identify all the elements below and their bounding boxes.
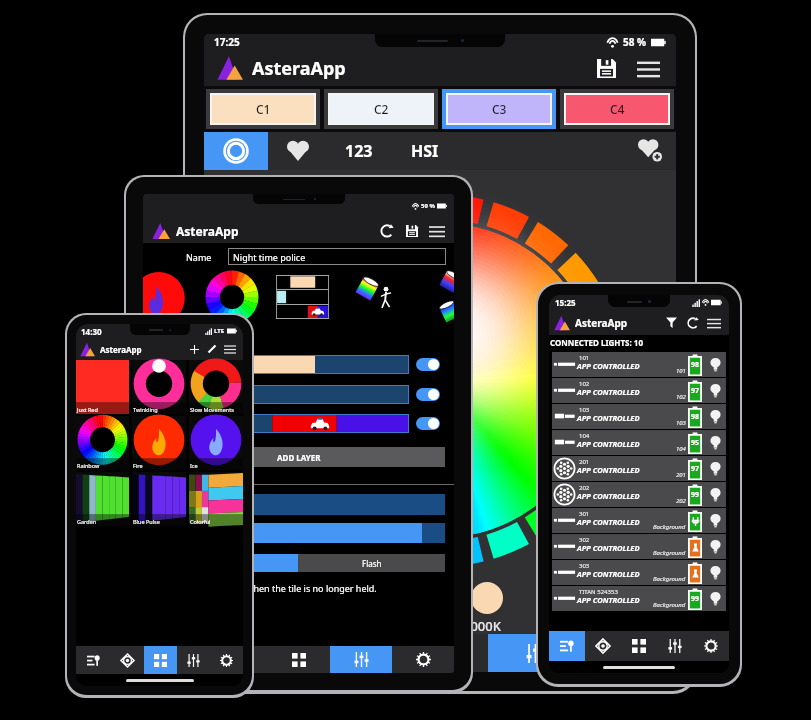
button[interactable]: Twinkling [132, 360, 186, 414]
button[interactable]: 303 [552, 560, 726, 585]
button[interactable]: Toggle layer [416, 388, 440, 401]
button[interactable]: Toggle layer [416, 358, 440, 371]
button[interactable]: Presets [621, 631, 657, 661]
button[interactable]: Just Red [76, 360, 129, 414]
button[interactable]: Presets [268, 646, 330, 673]
staticText: CONNECTED LIGHTS: 10 [550, 337, 643, 348]
button[interactable]: Ice [189, 416, 243, 470]
staticText: 95 [691, 438, 700, 448]
staticText: C4 [610, 101, 625, 117]
staticText: Garden [77, 518, 97, 525]
button[interactable]: Paint bucket rainbow [352, 274, 382, 304]
button[interactable]: Rainbow [76, 416, 129, 470]
button[interactable]: Fire [132, 416, 186, 470]
button[interactable]: Sliders [657, 631, 693, 661]
button[interactable]: Settings [582, 634, 676, 672]
button[interactable]: Slow Movements [189, 360, 243, 414]
button[interactable]: 301 [552, 508, 726, 533]
button[interactable]: Settings [210, 646, 243, 674]
staticText: APP CONTROLLED [577, 439, 640, 449]
button[interactable]: 102 [552, 378, 726, 403]
button[interactable]: Paint bucket green [436, 298, 454, 326]
button[interactable]: CCT preset [471, 582, 503, 614]
button[interactable]: Garden [76, 472, 129, 526]
staticText: 58 % [623, 35, 647, 49]
button[interactable]: Menu [703, 312, 724, 333]
button[interactable]: Settings [693, 631, 729, 661]
staticText: APP CONTROLLED [577, 543, 640, 553]
staticText: 101 [676, 367, 686, 375]
button[interactable]: 201 [552, 456, 726, 481]
button[interactable]: Colorful [189, 472, 243, 526]
button[interactable]: Lights [549, 631, 585, 661]
button[interactable]: Add to favorites [624, 132, 676, 170]
staticText: 301 [579, 510, 590, 518]
button[interactable]: Sliders [330, 646, 392, 673]
button[interactable]: Blue Pulse [132, 472, 186, 526]
button[interactable]: Sliders [177, 646, 210, 674]
button[interactable]: Menu [632, 52, 664, 84]
button[interactable]: Lights [204, 634, 299, 672]
button[interactable]: 202 [552, 482, 726, 507]
button[interactable]: Color wheel effect [205, 270, 259, 324]
button[interactable]: Menu [221, 340, 239, 358]
staticText: 99 [691, 594, 700, 604]
button[interactable]: Menu [425, 219, 448, 242]
button[interactable]: ADD LAYER [152, 447, 445, 467]
button[interactable]: Fire effect [143, 272, 191, 324]
staticText: C2 [374, 101, 389, 117]
button[interactable]: C4 [566, 95, 668, 123]
button[interactable]: Save [400, 219, 423, 242]
staticText: 302 [579, 536, 590, 544]
button[interactable]: Groups [299, 634, 394, 672]
staticText: Background [653, 575, 686, 583]
staticText: 123 [345, 140, 373, 162]
button[interactable]: 101 [552, 352, 726, 377]
staticText: APP CONTROLLED [577, 387, 640, 397]
staticText: AsteraApp [575, 316, 628, 330]
button[interactable]: 302 [552, 534, 726, 559]
staticText: HSI [411, 140, 439, 162]
button[interactable]: Night time police effect [276, 275, 329, 319]
button[interactable]: Paint bucket red [436, 268, 454, 296]
button[interactable]: Lights [76, 646, 110, 674]
button[interactable]: Presets [144, 646, 177, 674]
button[interactable]: Add [185, 340, 203, 358]
button[interactable]: Filter [661, 312, 682, 333]
staticText: Background [653, 523, 686, 531]
button[interactable]: Sliders [488, 634, 582, 672]
staticText: 101 [579, 354, 590, 362]
button[interactable]: 123 [328, 132, 390, 170]
button[interactable]: Latch [152, 554, 298, 572]
button[interactable]: 104 [552, 430, 726, 455]
button[interactable]: C1 [212, 95, 314, 123]
staticText: LTE [214, 327, 225, 335]
button[interactable]: Edit [203, 340, 221, 358]
button[interactable]: Presets [394, 634, 488, 672]
button[interactable]: Refresh [375, 219, 398, 242]
button[interactable]: Groups [110, 646, 144, 674]
button[interactable]: 103 [552, 404, 726, 429]
button[interactable]: Refresh [682, 312, 703, 333]
staticText: 202 [579, 484, 590, 492]
button[interactable]: Settings [392, 646, 454, 673]
staticText: 201 [676, 471, 686, 479]
staticText: Blue Pulse [133, 518, 160, 525]
button[interactable]: Lights [143, 646, 206, 673]
staticText: 202 [676, 497, 686, 505]
staticText: APP CONTROLLED [577, 569, 640, 579]
staticText: Ice [190, 462, 198, 469]
button[interactable]: Groups [206, 646, 268, 673]
button[interactable]: C2 [330, 95, 432, 123]
button[interactable]: Save [590, 52, 622, 84]
button[interactable]: Groups [585, 631, 621, 661]
button[interactable]: TITAN 524353 [552, 586, 726, 611]
button[interactable]: Flash [298, 554, 445, 572]
button[interactable]: HSI [390, 132, 460, 170]
staticText: 15:25 [555, 297, 576, 308]
staticText: 3000K [463, 617, 501, 635]
button[interactable]: Toggle layer [416, 417, 440, 430]
button[interactable]: Favorites [268, 132, 328, 170]
button[interactable]: Color wheel [204, 132, 268, 170]
button[interactable]: C3 [448, 95, 550, 123]
